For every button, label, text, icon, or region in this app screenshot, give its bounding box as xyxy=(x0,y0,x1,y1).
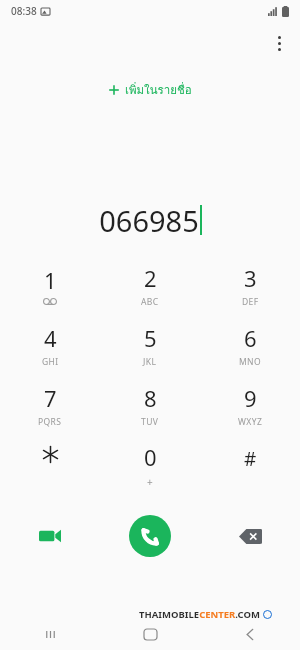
staticText: 066985 xyxy=(99,201,199,240)
staticText: 9 xyxy=(244,383,257,413)
button[interactable]: 3 xyxy=(200,255,300,315)
staticText: 08:38 xyxy=(11,4,37,18)
button[interactable]: 4 xyxy=(0,315,100,375)
staticText: 7 xyxy=(44,383,57,413)
staticText: TUV xyxy=(141,416,159,428)
button[interactable] xyxy=(0,435,100,495)
button[interactable]: Call xyxy=(100,505,200,567)
staticText: เพิ่มในรายชื่อ xyxy=(125,81,192,99)
button[interactable]: Back xyxy=(200,618,300,650)
button[interactable]: # xyxy=(200,435,300,495)
button[interactable]: 1 xyxy=(0,255,100,315)
staticText: + xyxy=(147,475,154,489)
staticText: 4 xyxy=(44,323,57,353)
staticText: 3 xyxy=(244,263,257,293)
staticText: 8 xyxy=(144,383,157,413)
staticText: ABC xyxy=(141,296,159,308)
button[interactable]: 5 xyxy=(100,315,200,375)
button[interactable]: Backspace xyxy=(200,505,300,567)
button[interactable]: Recents xyxy=(0,618,100,650)
staticText: 1 xyxy=(44,265,57,295)
staticText: 2 xyxy=(144,263,157,293)
button[interactable]: เพิ่มในรายชื่อ xyxy=(0,78,300,102)
button[interactable]: Home xyxy=(100,618,200,650)
button[interactable]: 8 xyxy=(100,375,200,435)
button[interactable]: Video call xyxy=(0,505,100,567)
staticText: MNO xyxy=(239,356,262,368)
button[interactable]: 9 xyxy=(200,375,300,435)
staticText: WXYZ xyxy=(238,416,263,428)
button[interactable]: More options xyxy=(266,30,292,56)
staticText: THAIMOBILECENTER.COM xyxy=(139,608,260,621)
staticText: GHI xyxy=(42,356,59,368)
button[interactable]: 0 xyxy=(100,435,200,495)
staticText: 0 xyxy=(144,442,157,472)
staticText: PQRS xyxy=(38,416,62,428)
staticText: 6 xyxy=(244,323,257,353)
staticText: # xyxy=(244,446,257,472)
staticText: JKL xyxy=(143,356,157,368)
button[interactable]: 7 xyxy=(0,375,100,435)
staticText: 5 xyxy=(144,323,157,353)
staticText: DEF xyxy=(242,296,259,308)
button[interactable]: 2 xyxy=(100,255,200,315)
button[interactable]: 6 xyxy=(200,315,300,375)
